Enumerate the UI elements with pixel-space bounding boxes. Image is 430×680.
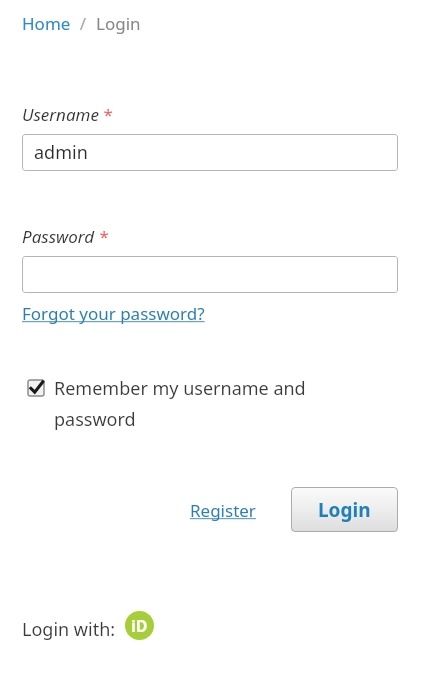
staticText: * bbox=[95, 225, 109, 248]
staticText: iD bbox=[131, 615, 148, 637]
button[interactable]: Login with ORCID bbox=[125, 611, 154, 640]
staticText: Home bbox=[22, 12, 71, 35]
button[interactable]: Home bbox=[22, 12, 71, 35]
staticText: Register bbox=[190, 499, 256, 522]
staticText: admin bbox=[34, 140, 88, 165]
button[interactable] bbox=[22, 256, 398, 293]
staticText: * bbox=[99, 103, 113, 126]
staticText: Password bbox=[22, 225, 95, 248]
staticText: / bbox=[71, 12, 96, 35]
button[interactable]: admin bbox=[22, 134, 398, 171]
button[interactable]: Remember my username and password bbox=[28, 376, 368, 431]
button[interactable]: Login bbox=[291, 487, 398, 532]
staticText: Login bbox=[96, 12, 141, 35]
staticText: Remember my username and password bbox=[54, 376, 368, 431]
staticText: Login with: bbox=[22, 617, 116, 642]
button[interactable]: Register bbox=[190, 499, 256, 522]
staticText: Forgot your password? bbox=[22, 302, 205, 325]
staticText: Login bbox=[318, 497, 371, 523]
staticText: Username bbox=[22, 103, 99, 126]
button[interactable]: Forgot your password? bbox=[22, 302, 205, 325]
